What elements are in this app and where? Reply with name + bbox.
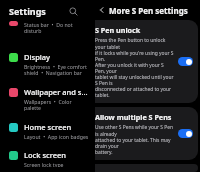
staticText: Use other S Pens while your S Pen is alr… [95, 124, 174, 155]
button[interactable]: Toggle [178, 129, 193, 138]
staticText: Wallpapers • Color palette [24, 98, 89, 112]
staticText: More S Pen settings [109, 5, 188, 16]
staticText: Wallpaper and style [24, 87, 89, 97]
staticText: Settings [9, 5, 46, 17]
staticText: Lock screen [24, 150, 67, 160]
staticText: Press the Pen button to unlock your tabl… [95, 37, 174, 98]
staticText: Home screen [24, 122, 72, 132]
button[interactable]: Wallpaper and style [0, 82, 95, 117]
button[interactable]: Toggle [178, 57, 193, 66]
button[interactable]: Display [0, 47, 95, 82]
staticText: Screen lock type [24, 161, 64, 167]
staticText: S Pen unlock [95, 25, 141, 35]
button[interactable]: Allow multiple S Pens [95, 107, 198, 160]
staticText: Brightness • Eye comfort shield • Naviga… [24, 63, 87, 77]
button[interactable]: Search [65, 3, 81, 19]
button[interactable]: Status bar • Do not disturb [0, 21, 95, 40]
button[interactable]: Lock screen [0, 145, 95, 172]
button[interactable]: S Pen unlock [95, 20, 198, 103]
staticText: Layout • App icon badges [24, 133, 89, 140]
button[interactable]: Back [95, 3, 109, 17]
staticText: Allow multiple S Pens [95, 112, 172, 122]
staticText: Display [24, 52, 51, 62]
staticText: Status bar • Do not disturb [24, 21, 89, 35]
button[interactable]: Home screen [0, 117, 95, 145]
